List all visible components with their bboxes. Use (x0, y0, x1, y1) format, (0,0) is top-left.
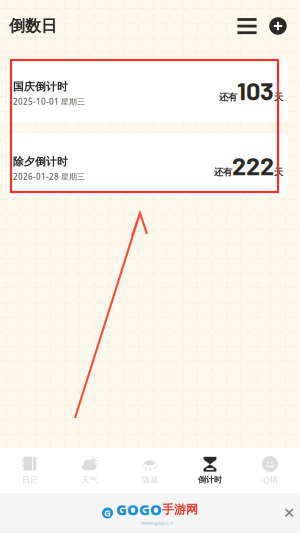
button[interactable]: 心情 (240, 448, 300, 493)
staticText: 2025-10-01 星期三 (13, 96, 85, 107)
staticText: 倒计时 (198, 475, 222, 485)
button[interactable]: 天气 (60, 448, 120, 493)
staticText: 还有 (219, 91, 237, 103)
staticText: 还有 (214, 166, 232, 178)
staticText: 2026-01-28 星期三 (13, 171, 85, 182)
staticText: 心情 (262, 475, 278, 485)
staticText: GO (139, 500, 162, 519)
staticText: 天气 (82, 475, 98, 485)
button[interactable]: Menu (235, 13, 259, 39)
staticText: www.gogo.cn (141, 519, 173, 526)
button[interactable]: 除夕倒计时 (7, 133, 288, 197)
staticText: 国庆倒计时 (13, 80, 68, 93)
staticText: 日记 (22, 475, 38, 485)
staticText: 手游网 (162, 502, 198, 517)
staticText: 222 (232, 150, 274, 180)
staticText: 103 (237, 75, 274, 105)
staticText: 天 (274, 91, 283, 103)
staticText: ✕ (283, 505, 295, 521)
button[interactable]: 倒计时 (180, 448, 240, 493)
staticText: G (104, 507, 111, 519)
staticText: 隐藏 (142, 475, 158, 485)
staticText: 天 (274, 166, 283, 178)
button[interactable]: 国庆倒计时 (7, 58, 288, 122)
staticText: 倒数日 (9, 16, 57, 36)
staticText: 除夕倒计时 (13, 155, 68, 168)
button[interactable]: 日记 (0, 448, 60, 493)
staticText: GO (116, 500, 139, 519)
button[interactable]: 隐藏 (120, 448, 180, 493)
button[interactable]: Add countdown (266, 13, 290, 39)
